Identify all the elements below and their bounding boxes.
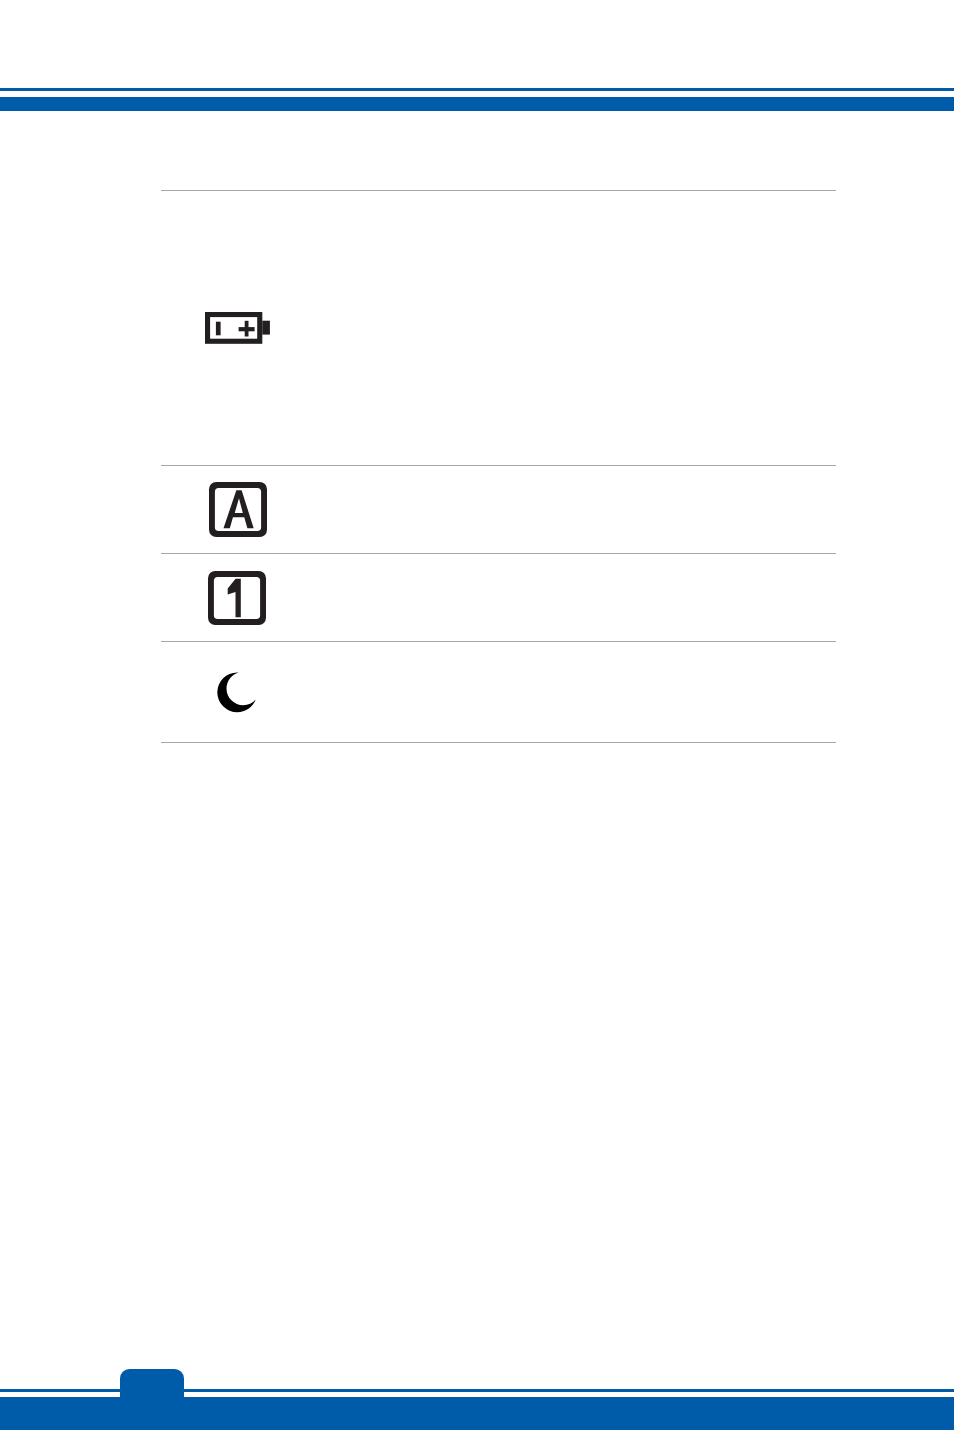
- other: Night mode: [218, 672, 260, 714]
- button[interactable]: Night mode: [161, 642, 836, 742]
- other: Key A: [209, 482, 267, 537]
- other: Key 1: [208, 571, 266, 625]
- button[interactable]: Key 1: [161, 554, 836, 641]
- button[interactable]: Chapter tab: [120, 1369, 184, 1430]
- other: Battery status: [205, 312, 271, 344]
- button[interactable]: Battery status: [161, 191, 836, 465]
- button[interactable]: Key A: [161, 466, 836, 553]
